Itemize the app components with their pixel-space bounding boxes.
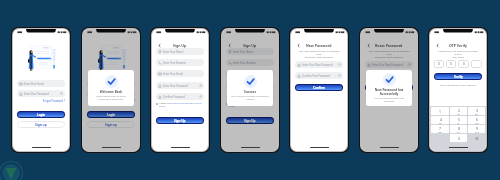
- button[interactable]: Confirm Password: [226, 93, 274, 100]
- button[interactable]: Confirm Password: [156, 93, 204, 100]
- button[interactable]: Confirm Your Password: [365, 72, 413, 79]
- staticText: 0: [463, 62, 465, 66]
- button[interactable]: [471, 60, 482, 68]
- staticText: Reset Password: [375, 43, 403, 48]
- button[interactable]: Enter Your Name: [156, 48, 204, 55]
- button[interactable]: 0: [458, 60, 469, 68]
- staticText: Login: [107, 113, 116, 117]
- staticText: Enter Your New Password: [372, 63, 403, 66]
- staticText: DEF: [475, 113, 478, 115]
- button[interactable]: 0: [434, 60, 444, 68]
- button[interactable]: Enter Your New Password: [295, 61, 343, 68]
- staticText: Forgot Password ?: [87, 99, 135, 103]
- staticText: Enter Your New Password: [302, 63, 333, 66]
- staticText: 6: [476, 117, 478, 122]
- staticText: New Password has Successfully: [370, 88, 408, 96]
- button[interactable]: 0: [450, 134, 467, 142]
- staticText: Welcome Back: [92, 90, 130, 94]
- staticText: Sign Up: [173, 43, 187, 48]
- staticText: I agree the Terms of Service and Privacy…: [159, 102, 204, 108]
- button[interactable]: 6: [468, 116, 485, 124]
- button[interactable]: Sign Up: [157, 118, 203, 123]
- staticText: Sign up: [105, 123, 117, 127]
- button[interactable]: Enter Your Email: [87, 80, 135, 87]
- staticText: GHI: [439, 122, 442, 124]
- staticText: 9: [476, 126, 478, 131]
- button[interactable]: Confirm Your Password: [295, 72, 343, 79]
- button[interactable]: Sign Up: [227, 118, 273, 123]
- button[interactable]: Confirm: [296, 85, 342, 90]
- staticText: 4: [440, 117, 442, 122]
- button[interactable]: Verify: [435, 74, 481, 79]
- button[interactable]: 8: [450, 125, 467, 133]
- staticText: Confirm: [383, 86, 396, 90]
- staticText: Verify: [454, 75, 463, 79]
- staticText: Enter Your Email: [94, 82, 114, 85]
- button[interactable]: 9: [468, 125, 485, 133]
- button[interactable]: Enter Your Password: [87, 90, 135, 97]
- button[interactable]: Back: [295, 42, 301, 48]
- staticText: Enter Your Password: [24, 92, 49, 95]
- button[interactable]: Back: [434, 42, 440, 48]
- button[interactable]: Enter Your Email: [156, 70, 204, 77]
- button[interactable]: Enter Your Password: [226, 82, 274, 89]
- staticText: Confirm Password: [233, 95, 255, 98]
- staticText: TUV: [457, 131, 460, 133]
- staticText: OTP Verify: [449, 43, 468, 48]
- staticText: Sign up: [35, 123, 47, 127]
- staticText: Your new password must be different from…: [298, 49, 340, 58]
- staticText: Confirm Your Password: [302, 74, 331, 77]
- button[interactable]: Enter Your Name: [226, 48, 274, 55]
- button[interactable]: [226, 103, 228, 105]
- staticText: 0: [458, 136, 460, 141]
- staticText: Sign Up: [174, 119, 186, 123]
- button[interactable]: Login: [88, 112, 134, 117]
- button[interactable]: Enter Your Email: [17, 80, 65, 87]
- staticText: Login: [37, 113, 46, 117]
- staticText: Please enter the code that has been sent…: [437, 49, 479, 58]
- button[interactable]: Back: [365, 42, 371, 48]
- button[interactable]: 2: [450, 107, 467, 115]
- staticText: JKL: [457, 122, 460, 124]
- staticText: Lorem ipsum dolor sit amet, consectetur …: [92, 95, 130, 101]
- button[interactable]: Enter Your New Password: [365, 61, 413, 68]
- staticText: 1: [439, 109, 441, 114]
- staticText: 0: [450, 62, 452, 66]
- button[interactable]: 3: [468, 107, 485, 115]
- staticText: 7: [439, 126, 441, 131]
- staticText: Sign Up: [243, 43, 257, 48]
- staticText: ABC: [457, 113, 460, 115]
- button[interactable]: 1: [431, 107, 449, 115]
- button[interactable]: 5: [450, 116, 467, 124]
- button[interactable]: 7: [431, 125, 449, 133]
- staticText: Enter Your Email: [163, 72, 183, 75]
- staticText: Forgot Password ?: [17, 99, 65, 103]
- button[interactable]: Confirm: [366, 85, 412, 90]
- button[interactable]: Sign up: [87, 121, 135, 128]
- button[interactable]: Enter Your Password: [17, 90, 65, 97]
- button[interactable]: Enter Your Password: [156, 82, 204, 89]
- staticText: Sign Up: [244, 119, 256, 123]
- staticText: Confirm Password: [163, 95, 185, 98]
- button[interactable]: Login: [18, 112, 64, 117]
- button[interactable]: Back: [156, 42, 162, 48]
- staticText: 2: [458, 108, 460, 113]
- button[interactable]: Enter Your Number: [156, 59, 204, 66]
- button[interactable]: 4: [431, 116, 449, 124]
- staticText: 5: [458, 117, 460, 122]
- staticText: Your account has been successfully creat…: [231, 95, 269, 101]
- button[interactable]: Enter Your Email: [226, 70, 274, 77]
- button[interactable]: [468, 134, 485, 142]
- button[interactable]: Back: [226, 42, 232, 48]
- staticText: WXYZ: [475, 131, 479, 133]
- button[interactable]: Sign up: [17, 121, 65, 128]
- button[interactable]: Enter Your Number: [226, 59, 274, 66]
- staticText: Enter Your Email: [24, 82, 44, 85]
- staticText: Confirm Your Password: [372, 74, 401, 77]
- staticText: MNO: [475, 122, 479, 124]
- staticText: Enter Your Password: [163, 84, 188, 87]
- button[interactable]: 0: [446, 60, 456, 68]
